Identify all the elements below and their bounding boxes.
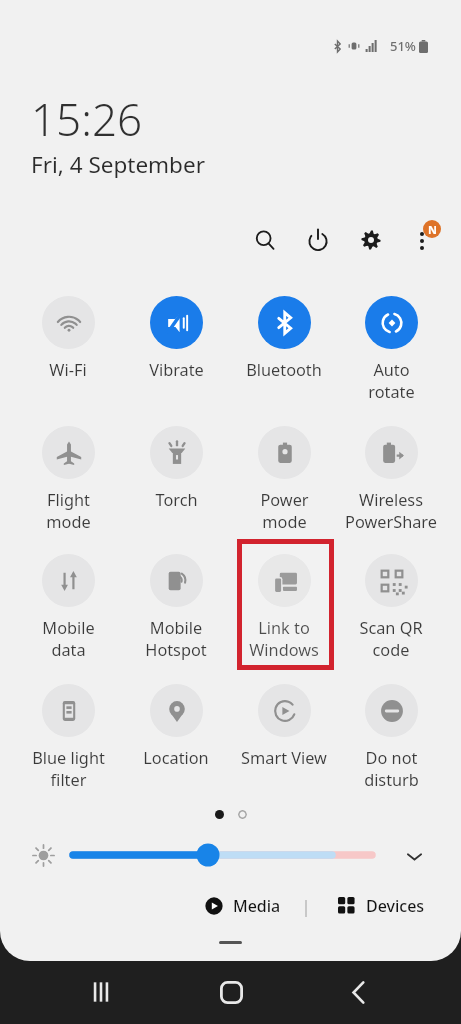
button[interactable]: Do not disturb — [341, 684, 441, 791]
button[interactable]: Expand brightness — [393, 835, 435, 877]
staticText: Wi-Fi — [49, 359, 87, 381]
staticText: 15:26 — [31, 89, 143, 149]
button[interactable]: Location — [126, 684, 226, 769]
staticText: Scan QR code — [359, 617, 423, 661]
button[interactable]: Torch — [126, 426, 226, 511]
staticText: Link to Windows — [249, 617, 319, 661]
staticText: Do not disturb — [364, 747, 419, 791]
button[interactable]: Bluetooth — [234, 296, 334, 381]
staticText: Smart View — [241, 747, 327, 769]
button[interactable]: Power — [295, 217, 341, 263]
staticText: Media — [233, 895, 281, 917]
button[interactable]: Wi-Fi — [18, 296, 118, 381]
button[interactable]: More options — [399, 218, 445, 264]
button[interactable]: Flight mode — [18, 426, 118, 533]
staticText: Mobile data — [42, 617, 95, 661]
button[interactable]: Link to Windows — [234, 554, 334, 661]
button[interactable]: Smart View — [234, 684, 334, 769]
button[interactable]: Scan QR code — [341, 554, 441, 661]
button[interactable]: Mobile data — [18, 554, 118, 661]
button[interactable]: Blue light filter — [18, 684, 118, 791]
button[interactable]: Power mode — [234, 426, 334, 533]
staticText: Power mode — [260, 489, 309, 533]
button[interactable]: Auto rotate — [341, 296, 441, 403]
staticText: Auto rotate — [368, 359, 415, 403]
button[interactable]: Settings — [348, 217, 394, 263]
button[interactable]: Page 1 — [215, 810, 224, 819]
button[interactable]: Search — [242, 217, 288, 263]
button[interactable]: Media — [199, 895, 287, 917]
staticText: Location — [143, 747, 209, 769]
button[interactable]: Brightness — [62, 835, 383, 875]
staticText: Mobile Hotspot — [145, 617, 207, 661]
staticText: 51% — [390, 37, 416, 55]
button[interactable]: Home — [201, 962, 261, 1022]
button[interactable]: Mobile Hotspot — [126, 554, 226, 661]
staticText: Wireless PowerShare — [345, 489, 437, 533]
staticText: Flight mode — [46, 489, 91, 533]
button[interactable]: Wireless PowerShare — [341, 426, 441, 533]
button[interactable]: Devices — [332, 895, 431, 917]
button[interactable]: Page 2 — [238, 810, 247, 819]
staticText: Blue light filter — [32, 747, 105, 791]
button[interactable]: Back — [328, 962, 388, 1022]
staticText: Torch — [155, 489, 198, 511]
button[interactable]: Recents — [71, 962, 131, 1022]
staticText: N — [428, 222, 437, 237]
staticText: Devices — [366, 895, 425, 917]
button[interactable]: Vibrate — [126, 296, 226, 381]
staticText: Fri, 4 September — [31, 149, 205, 180]
staticText: Bluetooth — [246, 359, 322, 381]
staticText: Vibrate — [149, 359, 204, 381]
